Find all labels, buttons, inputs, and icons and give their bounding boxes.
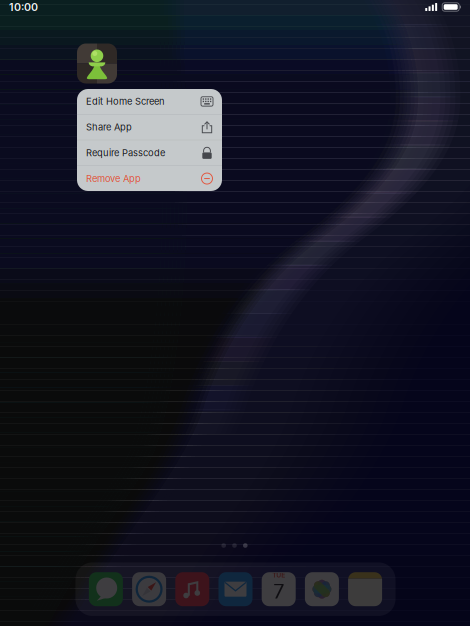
button[interactable]: Messages <box>89 572 123 606</box>
button[interactable]: Photos <box>305 572 339 606</box>
button[interactable]: Chess <box>77 43 117 83</box>
staticText: Remove App <box>86 173 141 184</box>
staticText: Share App <box>86 121 132 133</box>
button[interactable]: Calendar <box>262 572 296 606</box>
button[interactable]: Require Passcode <box>77 140 222 165</box>
button[interactable]: Edit Home Screen <box>77 89 222 114</box>
staticText: Edit Home Screen <box>86 96 165 107</box>
staticText: 10:00 <box>9 0 38 13</box>
staticText: Require Passcode <box>86 147 165 158</box>
button[interactable]: Safari <box>132 572 166 606</box>
button[interactable]: Mail <box>218 572 252 606</box>
button[interactable]: Share App <box>77 114 222 140</box>
button[interactable]: Notes <box>348 572 382 606</box>
staticText: TUE <box>272 571 285 579</box>
staticText: 7 <box>273 579 284 603</box>
button[interactable]: Remove App <box>77 166 222 191</box>
button[interactable]: Music <box>175 572 209 606</box>
